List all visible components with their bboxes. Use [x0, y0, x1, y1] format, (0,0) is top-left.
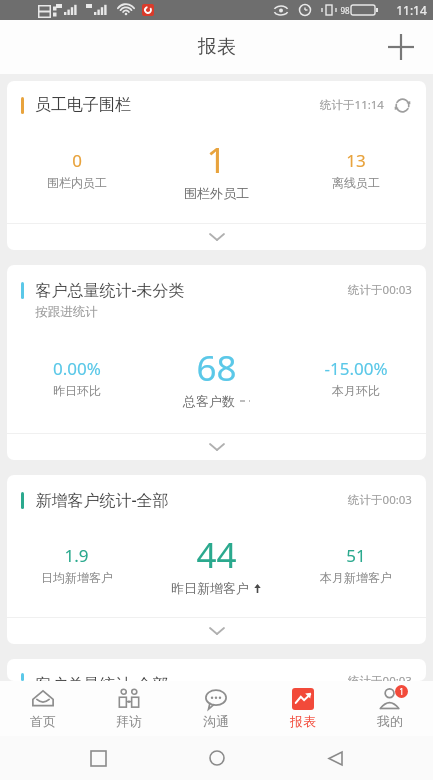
staticText: 总客户数 [183, 393, 235, 409]
button[interactable]: 刷新 [392, 95, 412, 115]
button[interactable]: 展开 [7, 618, 426, 644]
staticText: 拜访 [116, 713, 142, 729]
staticText: 本月环比 [332, 383, 380, 398]
staticText: 按跟进统计 [35, 304, 98, 320]
staticText: 44 [196, 531, 237, 579]
button[interactable]: 首页 [0, 681, 86, 736]
button[interactable]: 新增客户统计-全部 [7, 475, 426, 644]
button[interactable]: 展开 [7, 434, 426, 460]
staticText: 统计于00:03 [348, 492, 412, 508]
staticText: 我的 [377, 713, 403, 729]
staticText: 昨日新增客户 [171, 580, 249, 596]
button[interactable]: 最近任务 [78, 738, 118, 778]
staticText: 报表 [290, 713, 316, 729]
staticText: 0.00% [53, 357, 101, 380]
staticText: -15.00% [324, 357, 388, 380]
staticText: 报表 [198, 35, 236, 59]
staticText: 13 [346, 149, 366, 172]
staticText: 昨日环比 [53, 383, 101, 398]
button[interactable]: 主页 [197, 738, 237, 778]
staticText: 51 [346, 544, 366, 567]
staticText: 沟通 [203, 713, 229, 729]
staticText: 首页 [30, 713, 56, 729]
staticText: 日均新增客户 [41, 570, 113, 585]
staticText: 围栏外员工 [184, 185, 249, 201]
staticText: 68 [196, 344, 237, 392]
button[interactable]: 添加 [377, 23, 425, 71]
button[interactable]: 返回 [315, 738, 355, 778]
staticText: 客户总量统计-未分类 [35, 279, 185, 301]
staticText: 1 [206, 136, 227, 184]
button[interactable]: 客户总量统计-全部 [7, 659, 426, 681]
staticText: 统计于00:03 [348, 282, 412, 298]
staticText: 98 [340, 5, 350, 16]
staticText: 员工电子围栏 [35, 95, 131, 115]
staticText: 新增客户统计-全部 [35, 489, 169, 511]
button[interactable]: 拜访 [86, 681, 172, 736]
button[interactable]: 1 [346, 681, 433, 736]
staticText: 客户总量统计-全部 [35, 673, 169, 681]
staticText: 统计于00:03 [348, 673, 412, 681]
staticText: 1 [399, 686, 404, 697]
staticText: 1.9 [64, 544, 89, 567]
staticText: 11:14 [396, 2, 427, 18]
staticText: 围栏内员工 [47, 175, 107, 190]
button[interactable]: 客户总量统计-未分类 [7, 265, 426, 460]
staticText: 本月新增客户 [320, 570, 392, 585]
button[interactable]: 报表 [259, 681, 346, 736]
button[interactable]: 沟通 [172, 681, 259, 736]
staticText: 0 [72, 149, 82, 172]
staticText: 离线员工 [332, 175, 380, 190]
button[interactable]: 员工电子围栏 [7, 81, 426, 250]
button[interactable]: 展开 [7, 224, 426, 250]
staticText: 统计于11:14 [320, 97, 384, 113]
